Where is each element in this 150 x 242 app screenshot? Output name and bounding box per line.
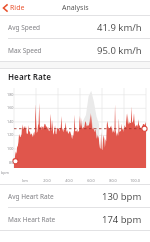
staticText: Avg Speed bbox=[8, 23, 41, 32]
staticText: km bbox=[22, 178, 28, 183]
staticText: 140 bbox=[7, 119, 14, 124]
button[interactable]: Max Speed bbox=[0, 39, 150, 61]
staticText: Ride bbox=[10, 3, 25, 13]
button[interactable]: Avg Speed bbox=[0, 16, 150, 38]
staticText: 80 bbox=[9, 160, 14, 165]
staticText: 100 bbox=[7, 146, 14, 151]
staticText: Max Heart Rate bbox=[8, 215, 56, 224]
staticText: 40.0 bbox=[65, 178, 73, 183]
staticText: Max Speed bbox=[8, 46, 42, 55]
staticText: 95.0 km/h bbox=[97, 44, 142, 57]
staticText: 60.0 bbox=[87, 178, 95, 183]
staticText: 41.9 km/h bbox=[97, 21, 142, 34]
staticText: 160 bbox=[7, 105, 14, 110]
staticText: 20.0 bbox=[43, 178, 51, 183]
staticText: Heart Rate bbox=[8, 71, 52, 82]
button[interactable]: Back bbox=[0, 2, 31, 14]
staticText: 100.0 bbox=[130, 178, 140, 183]
staticText: 120 bbox=[7, 132, 14, 137]
button[interactable]: Avg Heart Rate bbox=[0, 185, 150, 207]
staticText: 180 bbox=[7, 92, 14, 97]
staticText: bpm bbox=[1, 170, 9, 175]
staticText: 174 bpm bbox=[102, 213, 142, 226]
staticText: Analysis bbox=[62, 3, 89, 13]
other: Back bbox=[3, 4, 8, 12]
staticText: 80.0 bbox=[109, 178, 117, 183]
staticText: 130 bpm bbox=[102, 190, 142, 203]
button[interactable]: Max Heart Rate bbox=[0, 208, 150, 230]
staticText: Avg Heart Rate bbox=[8, 192, 54, 201]
